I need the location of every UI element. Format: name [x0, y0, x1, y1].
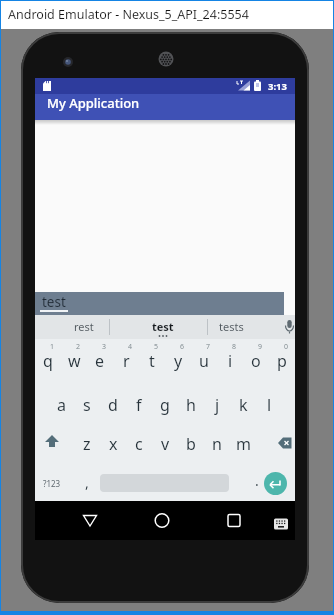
staticText: 8 [232, 342, 237, 352]
button[interactable]: v [152, 433, 178, 455]
button[interactable]: p [269, 350, 295, 372]
staticText: a [57, 394, 66, 416]
staticText: ?123 [43, 478, 61, 489]
button[interactable] [78, 511, 102, 531]
staticText: g [160, 394, 170, 416]
staticText: 3:13 [268, 80, 287, 93]
staticText: e [95, 350, 105, 372]
staticText: tests [219, 319, 244, 334]
button[interactable]: e [87, 350, 113, 372]
staticText: rest [74, 319, 94, 334]
button[interactable] [39, 433, 65, 453]
staticText: n [212, 433, 222, 455]
staticText: j [215, 394, 220, 416]
staticText: c [135, 433, 143, 455]
staticText: h [186, 394, 196, 416]
button[interactable]: l [256, 394, 282, 416]
button[interactable]: , [74, 472, 100, 492]
button[interactable]: k [230, 394, 256, 416]
staticText: p [277, 350, 287, 372]
staticText: test [152, 319, 174, 334]
button[interactable]: b [178, 433, 204, 455]
staticText: 9 [258, 342, 263, 352]
button[interactable]: y [165, 350, 191, 372]
staticText: z [83, 433, 91, 455]
staticText: 6 [180, 342, 185, 352]
button[interactable] [35, 94, 295, 120]
staticText: y [174, 350, 183, 372]
button[interactable] [270, 433, 298, 453]
button[interactable] [35, 292, 284, 315]
staticText: 3 [102, 342, 107, 352]
staticText: s [83, 394, 91, 416]
staticText: 1 [50, 342, 55, 352]
button[interactable]: o [243, 350, 269, 372]
button[interactable]: rest [59, 315, 109, 337]
button[interactable]: g [152, 394, 178, 416]
staticText: m [236, 433, 251, 455]
staticText: r [123, 350, 130, 372]
staticText: u [199, 350, 209, 372]
button[interactable]: x [100, 433, 126, 455]
button[interactable]: w [61, 350, 87, 372]
button[interactable]: ?123 [39, 474, 65, 492]
button[interactable]: s [74, 394, 100, 416]
button[interactable]: j [204, 394, 230, 416]
staticText: Android Emulator - Nexus_5_API_24:5554 [8, 6, 249, 23]
button[interactable]: a [48, 394, 74, 416]
button[interactable] [272, 517, 290, 532]
staticText: 5 [154, 342, 159, 352]
staticText: x [109, 433, 118, 455]
staticText: 0 [284, 342, 289, 352]
staticText: i [228, 350, 233, 372]
button[interactable]: t [139, 350, 165, 372]
staticText: 4 [128, 342, 133, 352]
staticText: My Application [47, 94, 140, 112]
button[interactable] [264, 472, 287, 495]
button[interactable]: test [138, 315, 188, 337]
staticText: . [255, 471, 259, 490]
button[interactable] [150, 511, 174, 531]
staticText: 2 [76, 342, 81, 352]
staticText: b [186, 433, 196, 455]
button[interactable]: z [74, 433, 100, 455]
staticText: test [42, 293, 66, 311]
staticText: , [85, 473, 89, 492]
button[interactable]: u [191, 350, 217, 372]
button[interactable]: h [178, 394, 204, 416]
staticText: w [68, 350, 81, 372]
button[interactable]: n [204, 433, 230, 455]
button[interactable]: d [100, 394, 126, 416]
button[interactable] [222, 511, 246, 531]
staticText: f [136, 394, 142, 416]
staticText: d [108, 394, 118, 416]
staticText: 7 [206, 342, 211, 352]
staticText: k [239, 394, 248, 416]
staticText: l [267, 394, 272, 416]
button[interactable]: f [126, 394, 152, 416]
button[interactable]: q [35, 350, 61, 372]
button[interactable]: tests [206, 315, 256, 337]
button[interactable]: . [244, 470, 270, 490]
button[interactable]: c [126, 433, 152, 455]
staticText: t [149, 350, 155, 372]
staticText: o [251, 350, 261, 372]
button[interactable]: m [230, 433, 256, 455]
button[interactable]: r [113, 350, 139, 372]
staticText: q [43, 350, 53, 372]
button[interactable]: i [217, 350, 243, 372]
staticText: v [161, 433, 170, 455]
